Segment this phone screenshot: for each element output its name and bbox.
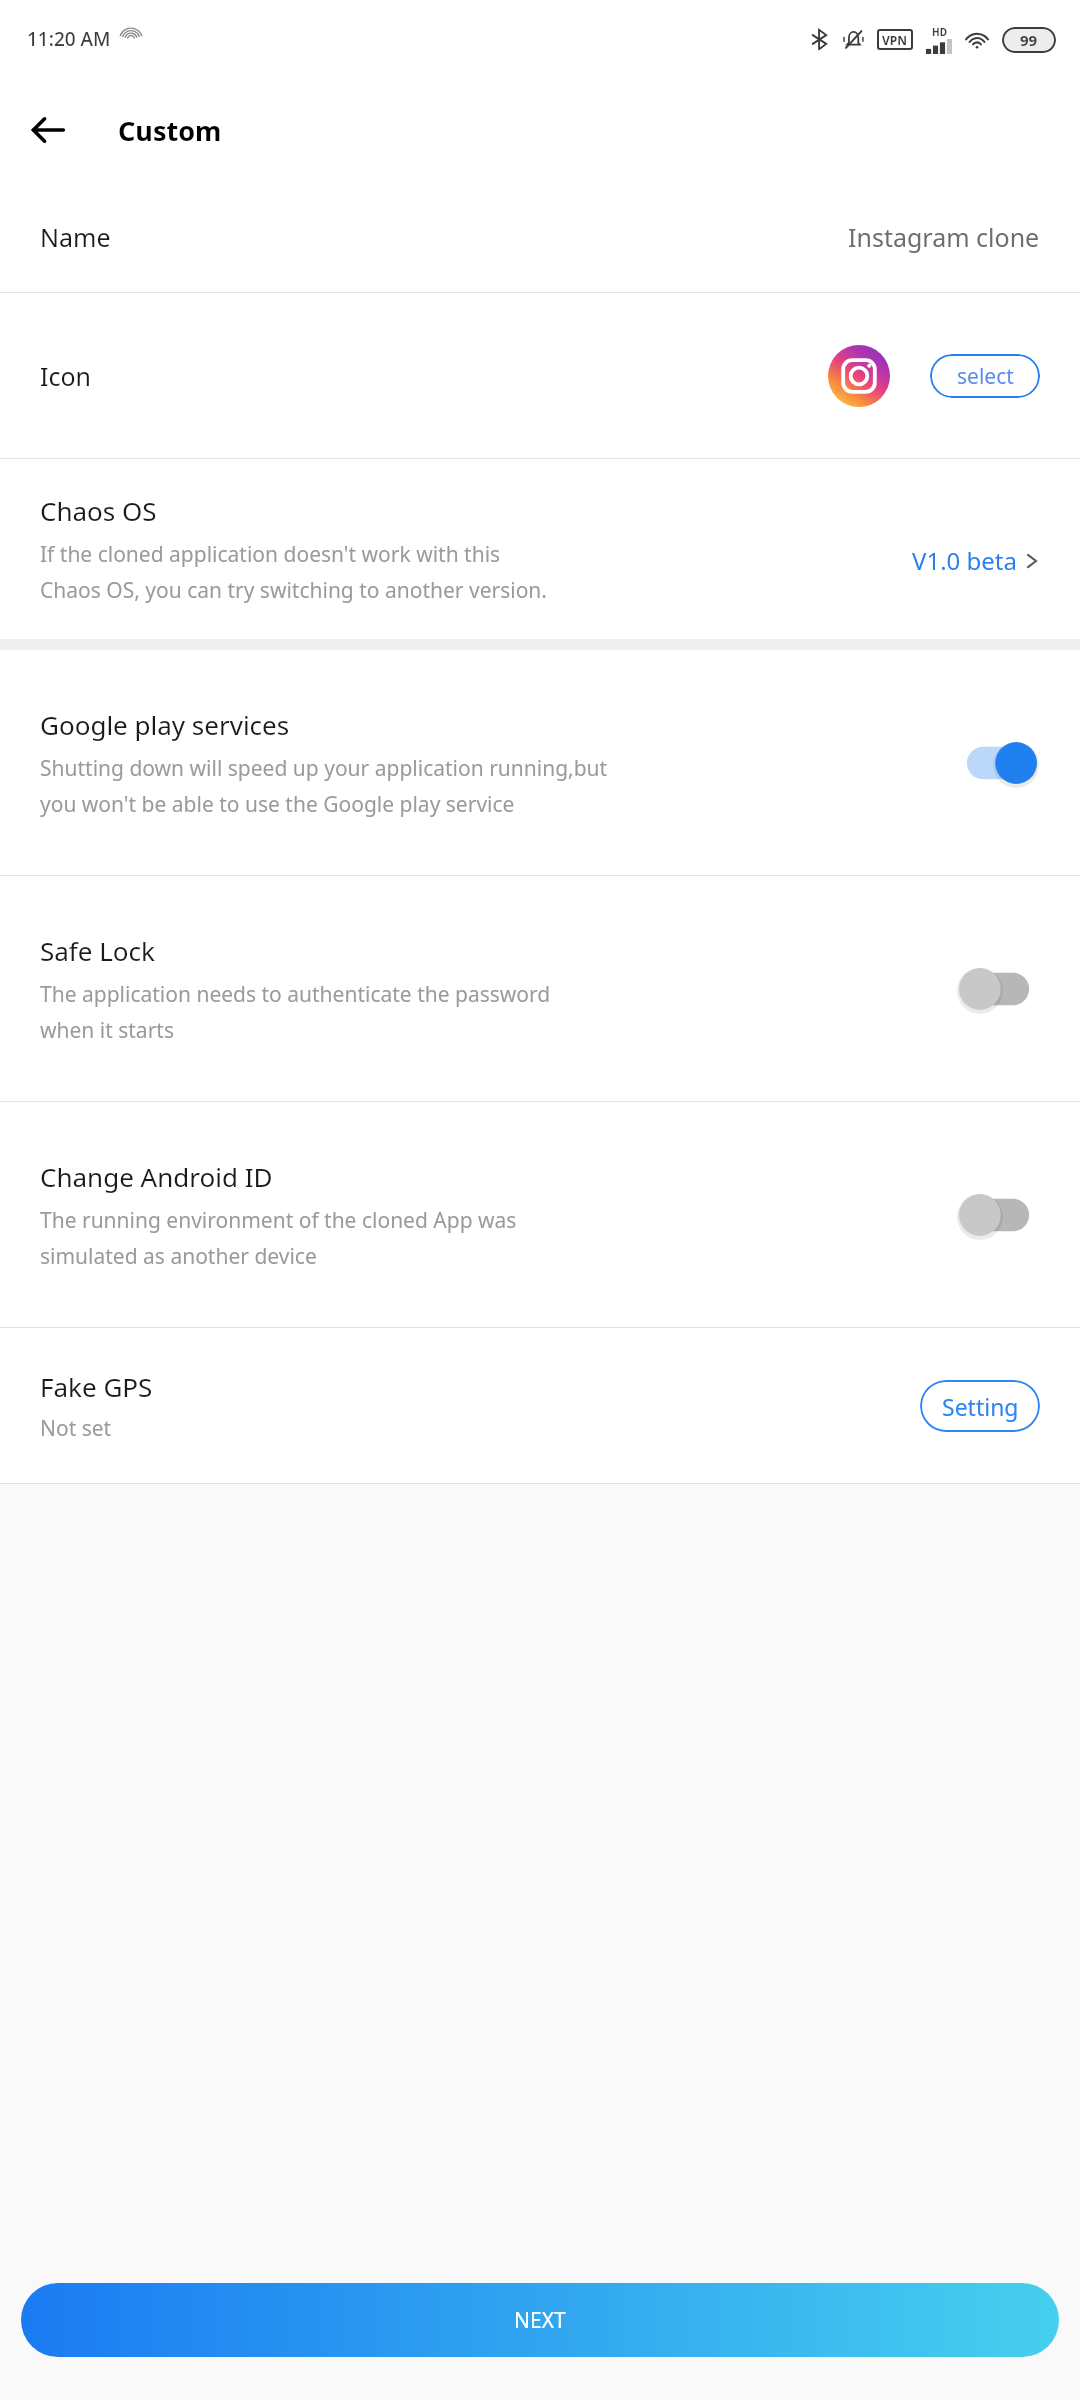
- button[interactable]: On: [956, 734, 1040, 792]
- staticText: The application needs to authenticate th…: [40, 980, 551, 1009]
- button[interactable]: Name: [0, 182, 1080, 292]
- staticText: Fake GPS: [40, 1369, 153, 1404]
- staticText: select: [957, 362, 1014, 391]
- staticText: HD: [932, 25, 947, 39]
- button[interactable]: Off: [956, 960, 1040, 1018]
- button[interactable]: Off: [956, 1186, 1040, 1244]
- staticText: when it starts: [40, 1016, 174, 1045]
- button[interactable]: NEXT: [21, 2283, 1059, 2357]
- button[interactable]: Chaos OS: [0, 459, 1080, 639]
- staticText: Chaos OS: [40, 493, 157, 528]
- staticText: Instagram clone: [848, 220, 1040, 254]
- button[interactable]: Safe Lock: [0, 876, 1080, 1101]
- staticText: V1.0 beta: [912, 544, 1017, 577]
- button[interactable]: Back: [20, 102, 76, 158]
- staticText: Safe Lock: [40, 933, 155, 968]
- staticText: Not set: [40, 1414, 112, 1443]
- staticText: Setting: [942, 1391, 1019, 1422]
- staticText: Google play services: [40, 707, 290, 742]
- staticText: Icon: [40, 359, 92, 393]
- button[interactable]: Fake GPS: [0, 1328, 1080, 1483]
- staticText: Change Android ID: [40, 1159, 273, 1194]
- staticText: 99: [1020, 30, 1038, 50]
- button[interactable]: Google play services: [0, 650, 1080, 875]
- staticText: you won't be able to use the Google play…: [40, 790, 515, 819]
- staticText: Chaos OS, you can try switching to anoth…: [40, 576, 547, 605]
- staticText: The running environment of the cloned Ap…: [40, 1206, 517, 1235]
- staticText: NEXT: [514, 2306, 566, 2335]
- button[interactable]: Setting: [920, 1380, 1040, 1432]
- staticText: Custom: [118, 112, 222, 149]
- staticText: Shutting down will speed up your applica…: [40, 754, 608, 783]
- button[interactable]: select: [930, 354, 1040, 398]
- staticText: Name: [40, 220, 111, 254]
- staticText: 11:20 AM: [27, 26, 111, 52]
- button[interactable]: Change Android ID: [0, 1102, 1080, 1327]
- button[interactable]: Icon: [0, 293, 1080, 458]
- staticText: simulated as another device: [40, 1242, 317, 1271]
- staticText: If the cloned application doesn't work w…: [40, 540, 501, 569]
- staticText: VPN: [882, 32, 908, 48]
